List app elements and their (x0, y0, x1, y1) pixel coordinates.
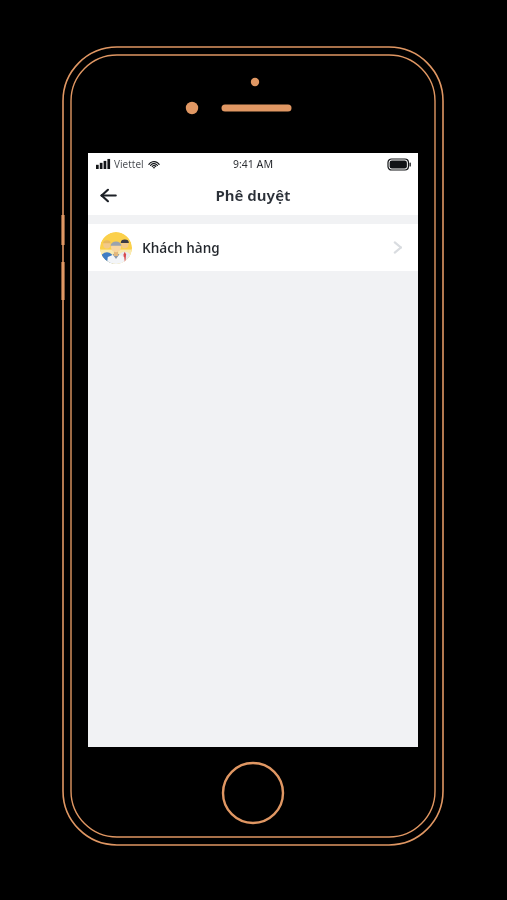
button[interactable]: Khách hàng (88, 224, 418, 271)
staticText: Viettel (114, 157, 144, 171)
staticText: Phê duyệt (215, 185, 291, 205)
staticText: 9:41 AM (233, 157, 274, 171)
staticText: Khách hàng (142, 239, 220, 257)
button[interactable]: Back (88, 175, 128, 215)
